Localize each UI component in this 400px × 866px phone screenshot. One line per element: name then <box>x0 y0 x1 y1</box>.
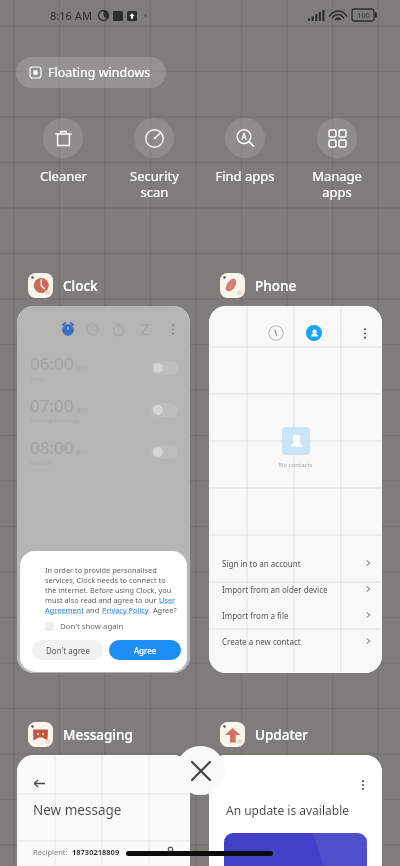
staticText: services, Clock needs to connect to <box>45 575 166 585</box>
staticText: Don't agree <box>46 645 90 656</box>
button[interactable]: Don't agree <box>32 640 103 660</box>
staticText: No contacts <box>279 461 313 469</box>
staticText: Manage apps <box>312 167 362 200</box>
button[interactable]: Phone <box>220 273 297 298</box>
staticText: Create a new contact <box>222 636 301 647</box>
staticText: 08:00 <box>30 436 74 459</box>
staticText: 06:00 <box>30 352 74 375</box>
staticText: 18730218809 <box>72 847 120 857</box>
staticText: . Agree? <box>149 605 177 615</box>
button[interactable]: Don't show again <box>45 621 124 632</box>
staticText: Floating windows <box>48 64 151 81</box>
staticText: Recipient: <box>33 847 68 857</box>
button[interactable]: Clock <box>28 273 98 298</box>
button[interactable]: Import from a file <box>222 602 372 628</box>
staticText: am <box>76 362 88 373</box>
staticText: Privacy Policy <box>102 605 149 615</box>
staticText: Messaging <box>63 726 133 744</box>
staticText: Phone <box>255 277 297 295</box>
staticText: must also read and agree to our <box>45 595 159 605</box>
staticText: and <box>84 605 102 615</box>
staticText: 07:00 <box>30 394 74 417</box>
button[interactable]: Manage apps <box>292 118 382 200</box>
staticText: Agree <box>134 645 157 656</box>
button[interactable]: Messaging <box>28 722 133 747</box>
button[interactable]: Floating windows <box>16 57 166 88</box>
staticText: Sign in to an account <box>222 558 301 569</box>
button[interactable]: Create a new contact <box>222 628 372 654</box>
staticText: am <box>76 446 88 457</box>
button[interactable]: 06:00 <box>17 306 190 673</box>
staticText: Don't show again <box>60 621 124 632</box>
button[interactable]: Sign in to an account <box>222 550 372 576</box>
staticText: User <box>159 595 176 605</box>
staticText: New message <box>33 801 122 819</box>
staticText: Find apps <box>215 167 275 185</box>
staticText: am <box>76 404 88 415</box>
button[interactable]: Find apps <box>200 118 290 185</box>
staticText: Updater <box>255 726 309 744</box>
button[interactable]: Updater <box>220 722 309 747</box>
button[interactable]: An update is available <box>209 755 382 866</box>
button[interactable]: Security scan <box>109 118 199 200</box>
staticText: Clock <box>63 277 98 295</box>
button[interactable]: New message <box>17 755 190 866</box>
staticText: Security scan <box>130 167 179 200</box>
button[interactable]: Agree <box>109 640 181 660</box>
staticText: Cleaner <box>40 167 87 185</box>
staticText: An update is available <box>226 802 350 818</box>
staticText: Import from a file <box>222 610 289 621</box>
button[interactable]: No contacts <box>209 306 382 673</box>
button[interactable]: Close all <box>176 746 225 795</box>
button[interactable]: Import from an older device <box>222 576 372 602</box>
staticText: 100 <box>357 10 370 20</box>
staticText: In order to provide personalised <box>45 565 157 575</box>
staticText: the internet. Before using Clock, you <box>45 585 172 595</box>
staticText: Agreement <box>45 605 84 615</box>
staticText: 8:16 AM <box>50 8 93 23</box>
staticText: Import from an older device <box>222 584 328 595</box>
button[interactable]: Cleaner <box>18 118 108 185</box>
